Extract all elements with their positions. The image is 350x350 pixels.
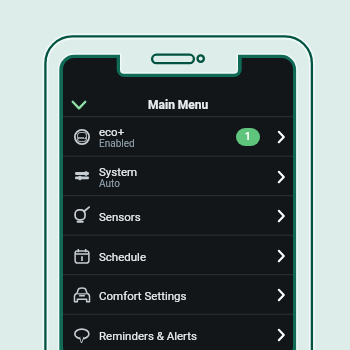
button[interactable]: Schedule <box>63 236 293 276</box>
button[interactable]: Collapse menu <box>65 91 93 119</box>
staticText: Auto <box>99 178 120 190</box>
button[interactable]: eco+ <box>63 117 293 157</box>
staticText: Main Menu <box>148 98 209 112</box>
staticText: eco+ <box>78 135 87 139</box>
button[interactable]: System <box>63 157 293 197</box>
staticText: System <box>99 165 138 178</box>
staticText: 1 <box>245 131 251 143</box>
staticText: eco+ <box>99 125 125 138</box>
button[interactable]: Comfort Settings <box>63 275 293 315</box>
staticText: Comfort Settings <box>99 289 187 302</box>
button[interactable]: Sensors <box>63 196 293 236</box>
staticText: Enabled <box>99 138 135 150</box>
button[interactable]: Reminders & Alerts <box>63 315 293 350</box>
staticText: Reminders & Alerts <box>99 329 197 342</box>
staticText: Sensors <box>99 210 141 223</box>
staticText: Schedule <box>99 250 146 263</box>
